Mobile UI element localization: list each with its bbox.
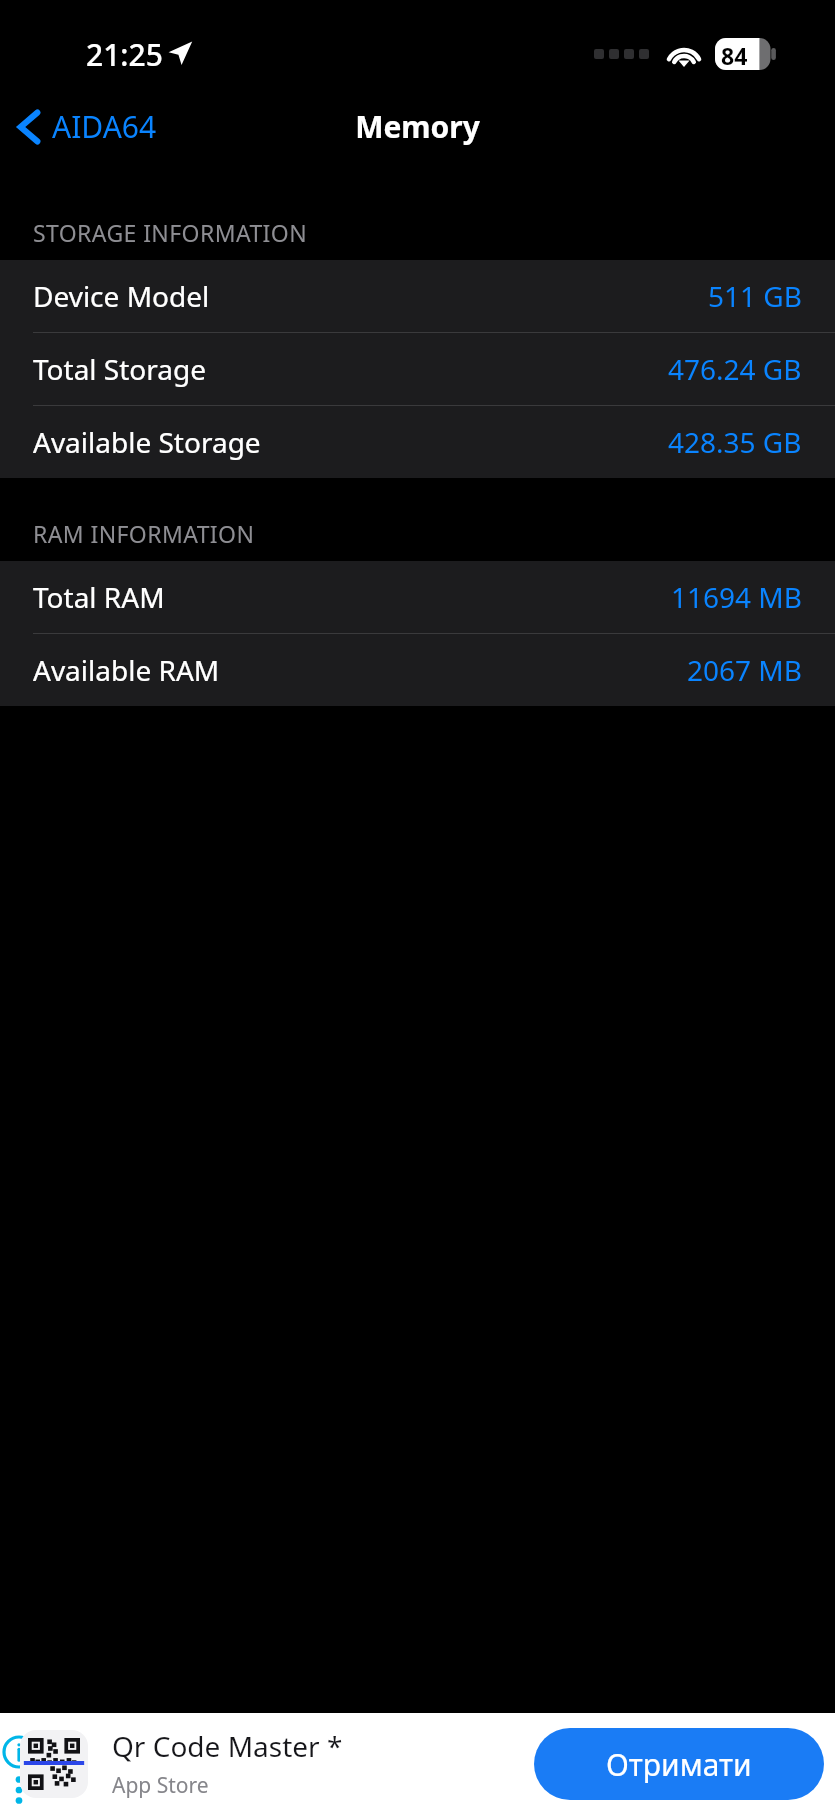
staticText: 11694 MB xyxy=(671,578,802,616)
button[interactable]: Total Storage xyxy=(0,333,835,405)
button[interactable]: Device Model xyxy=(0,260,835,332)
staticText: 428.35 GB xyxy=(668,423,802,461)
button[interactable]: AIDA64 xyxy=(0,100,169,153)
button[interactable]: Available RAM xyxy=(0,634,835,706)
staticText: 511 GB xyxy=(708,277,802,315)
staticText: 2067 MB xyxy=(687,651,802,689)
staticText: 476.24 GB xyxy=(668,350,802,388)
staticText: Available Storage xyxy=(33,423,261,461)
staticText: Total RAM xyxy=(33,578,165,616)
staticText: Memory xyxy=(355,106,480,147)
button[interactable]: Отримати xyxy=(534,1728,824,1800)
staticText: App Store xyxy=(112,1771,209,1800)
button[interactable]: Available Storage xyxy=(0,406,835,478)
staticText: 21:25 xyxy=(86,34,163,75)
button[interactable]: Qr Code Master app icon xyxy=(20,1730,88,1798)
staticText: Отримати xyxy=(606,1744,752,1785)
staticText: AIDA64 xyxy=(52,106,157,147)
staticText: 84 xyxy=(721,40,748,71)
staticText: Qr Code Master * xyxy=(112,1727,343,1765)
staticText: Total Storage xyxy=(33,350,207,388)
staticText: RAM INFORMATION xyxy=(33,518,255,549)
staticText: Available RAM xyxy=(33,651,220,689)
button[interactable]: Total RAM xyxy=(0,561,835,633)
staticText: Device Model xyxy=(33,277,210,315)
button[interactable]: Ad information xyxy=(2,1735,36,1805)
staticText: STORAGE INFORMATION xyxy=(33,217,308,248)
